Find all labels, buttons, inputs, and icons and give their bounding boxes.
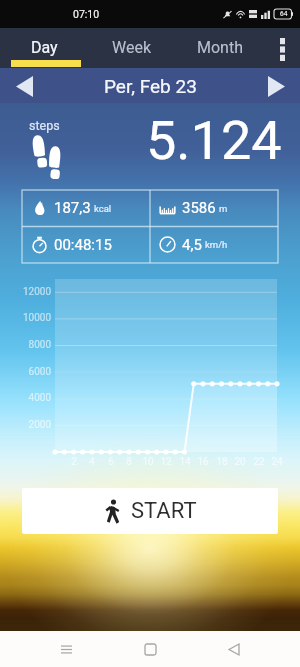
staticText: 22 bbox=[249, 456, 269, 468]
staticText: 3586 bbox=[182, 199, 216, 217]
staticText: 4000 bbox=[0, 392, 51, 404]
button[interactable]: Next day bbox=[260, 70, 292, 102]
staticText: 12000 bbox=[0, 286, 51, 298]
staticText: Week bbox=[112, 38, 152, 57]
button[interactable]: 187,3 bbox=[22, 190, 150, 226]
staticText: kcal bbox=[94, 203, 112, 214]
staticText: 5.124 bbox=[146, 109, 282, 172]
staticText: START bbox=[131, 498, 197, 524]
staticText: 6 bbox=[101, 456, 121, 468]
button[interactable]: More options bbox=[264, 28, 300, 68]
button[interactable]: 4,5 bbox=[150, 226, 278, 263]
staticText: 16 bbox=[193, 456, 213, 468]
button[interactable]: Month bbox=[176, 28, 264, 68]
button[interactable]: Week bbox=[88, 28, 176, 68]
staticText: 6000 bbox=[0, 366, 51, 378]
staticText: Month bbox=[197, 38, 243, 57]
button[interactable]: Back bbox=[216, 631, 252, 667]
button[interactable]: 3586 bbox=[150, 190, 278, 226]
staticText: 8 bbox=[119, 456, 139, 468]
staticText: 00:48:15 bbox=[54, 236, 112, 254]
button[interactable]: Previous day bbox=[8, 70, 40, 102]
staticText: 12 bbox=[156, 456, 176, 468]
button[interactable]: START bbox=[22, 488, 278, 534]
staticText: km/h bbox=[205, 239, 228, 250]
staticText: 10000 bbox=[0, 312, 51, 324]
staticText: Day bbox=[31, 38, 58, 57]
staticText: 4,5 bbox=[182, 236, 202, 254]
staticText: 14 bbox=[175, 456, 195, 468]
staticText: 2000 bbox=[0, 419, 51, 431]
staticText: 07:10 bbox=[73, 8, 100, 20]
staticText: steps bbox=[29, 118, 60, 133]
staticText: m bbox=[219, 203, 228, 214]
staticText: Per, Feb 23 bbox=[104, 75, 197, 97]
button[interactable]: Home bbox=[132, 631, 168, 667]
staticText: 8000 bbox=[0, 339, 51, 351]
staticText: 4 bbox=[82, 456, 102, 468]
button[interactable]: 00:48:15 bbox=[22, 226, 150, 263]
staticText: 187,3 bbox=[54, 199, 91, 217]
staticText: 18 bbox=[212, 456, 232, 468]
button[interactable]: Recent apps bbox=[48, 631, 84, 667]
staticText: 2 bbox=[64, 456, 84, 468]
staticText: 64 bbox=[280, 10, 288, 18]
staticText: 24 bbox=[267, 456, 287, 468]
staticText: 20 bbox=[230, 456, 250, 468]
staticText: 10 bbox=[138, 456, 158, 468]
button[interactable]: Day bbox=[0, 28, 88, 68]
